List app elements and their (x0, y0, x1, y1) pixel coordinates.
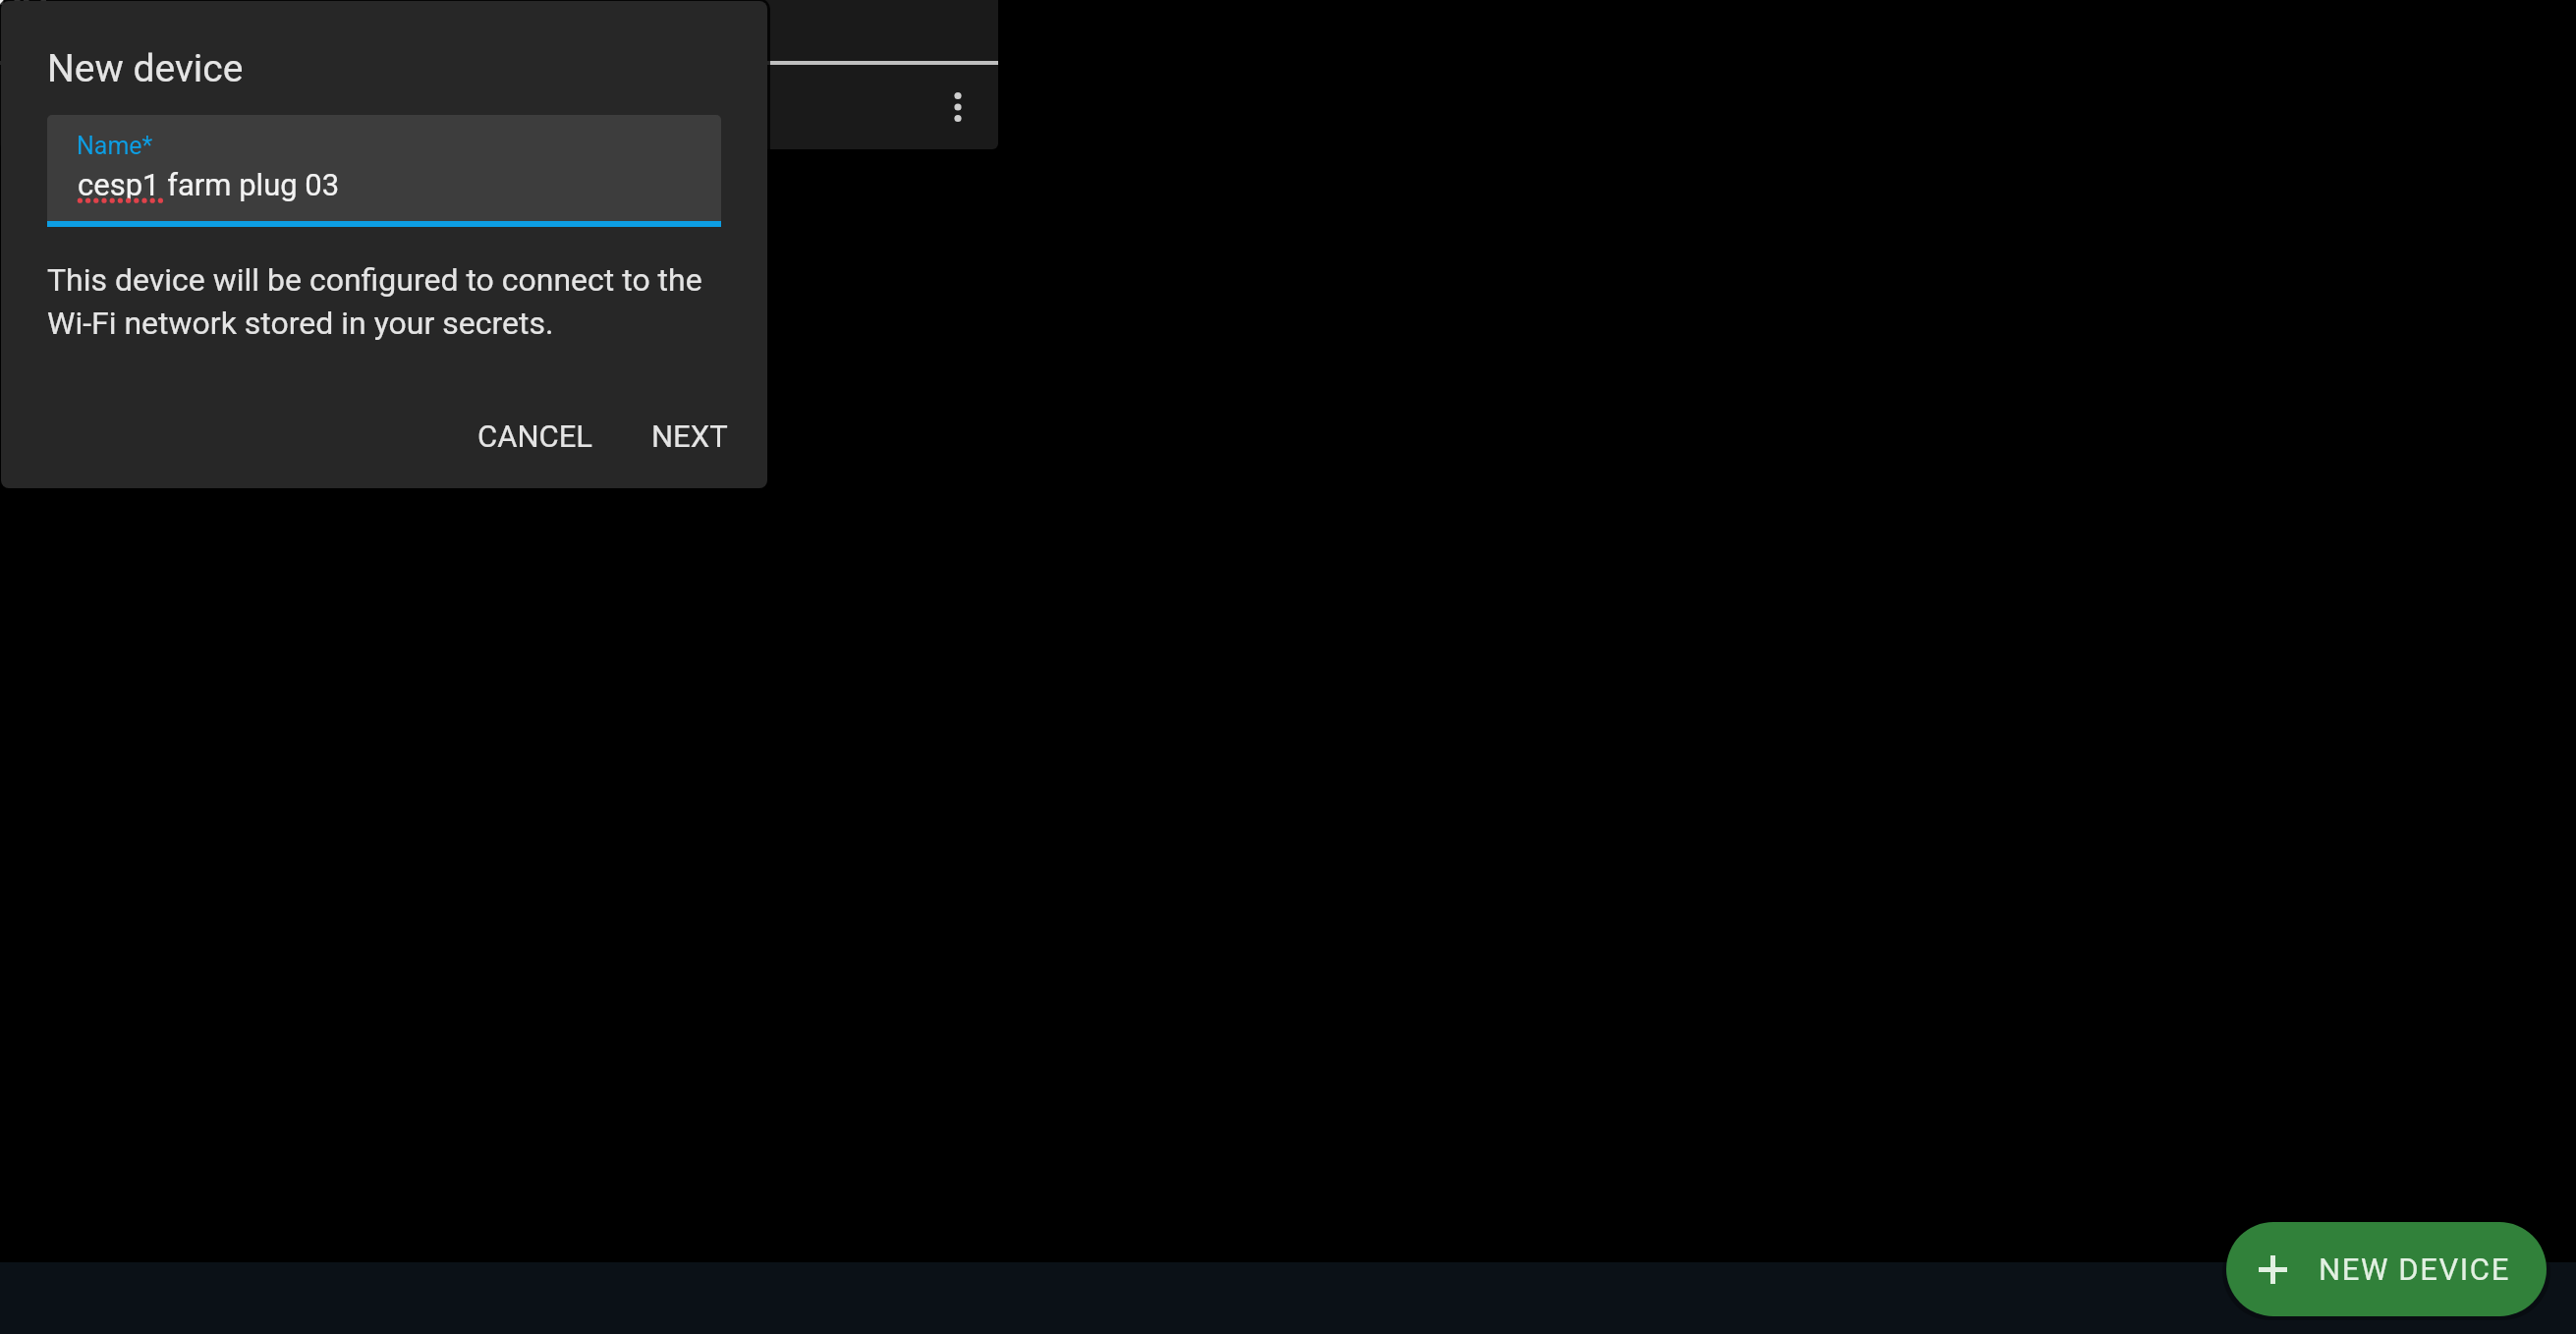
button[interactable]: NEW DEVICE (2226, 1222, 2547, 1316)
staticText: NEXT (651, 418, 728, 454)
button[interactable]: CANCEL (458, 405, 613, 468)
button[interactable]: More options (934, 83, 981, 131)
staticText: Name* (77, 132, 153, 160)
staticText: cesp1 farm plug 03 (78, 167, 340, 202)
button[interactable]: NEXT (632, 405, 748, 468)
staticText: This device will be configured to connec… (47, 261, 702, 342)
staticText: New device (47, 46, 244, 91)
staticText: NEW DEVICE (2319, 1251, 2510, 1287)
button[interactable]: Name* (47, 115, 721, 221)
staticText: CANCEL (477, 418, 593, 454)
